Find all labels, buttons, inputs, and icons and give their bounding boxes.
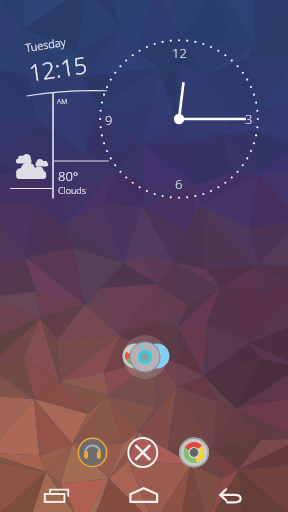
staticText: 9 [105, 111, 113, 129]
staticText: 80° [58, 167, 79, 185]
staticText: 12 [172, 44, 187, 62]
button[interactable]: Clock widget [14, 30, 134, 90]
button[interactable]: Weather, 80 degrees, Clouds [8, 150, 98, 200]
button[interactable]: Home [120, 482, 168, 512]
staticText: 3 [245, 110, 253, 128]
button[interactable]: Chrome [179, 436, 213, 470]
button[interactable]: Back [206, 482, 254, 512]
button[interactable]: Analog clock [99, 39, 259, 199]
button[interactable]: Recents [34, 482, 82, 512]
staticText: AM [57, 97, 68, 107]
button[interactable]: App folder [121, 336, 165, 380]
button[interactable]: Play Music [77, 436, 111, 470]
staticText: 6 [175, 175, 183, 193]
staticText: Tuesday [24, 34, 67, 55]
staticText: 12:15 [27, 48, 90, 88]
button[interactable]: All apps [127, 436, 161, 470]
staticText: Clouds [58, 184, 86, 196]
